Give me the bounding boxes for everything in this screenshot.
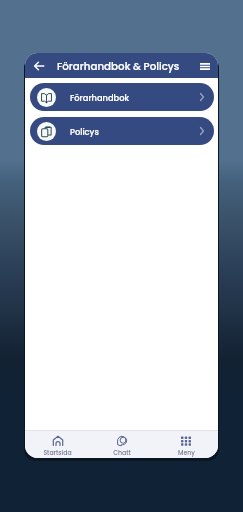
button[interactable]: Meny [154,431,218,458]
staticText: Startsida [43,448,72,457]
staticText: Förarhandbok & Policys [57,59,180,73]
button[interactable]: Förarhandbok [30,83,214,111]
button[interactable]: Back [32,59,46,73]
button[interactable]: Menu [198,59,212,73]
button[interactable]: Policys [30,117,214,145]
staticText: Chatt [113,448,131,457]
staticText: Meny [178,448,195,457]
button[interactable]: Chatt [90,431,154,458]
button[interactable]: Startsida [25,431,90,458]
staticText: Policys [70,126,99,138]
staticText: Förarhandbok [70,92,130,104]
